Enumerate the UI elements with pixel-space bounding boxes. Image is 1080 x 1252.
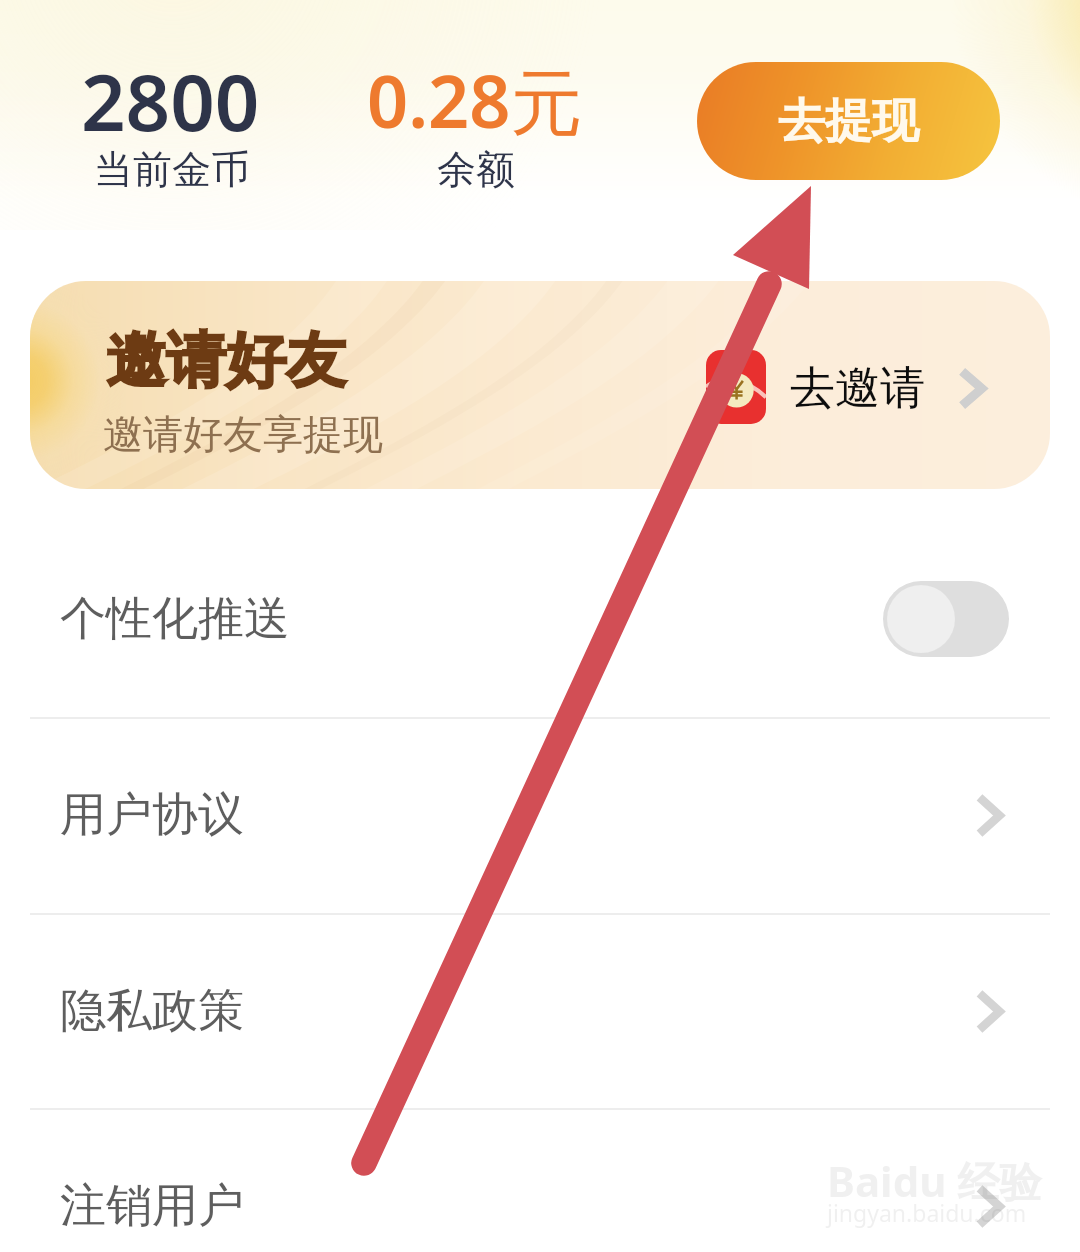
- staticText: 余额: [437, 145, 515, 194]
- button[interactable]: 去邀请: [790, 350, 985, 426]
- staticText: 0.28元: [367, 51, 583, 149]
- other: Open 隐私政策: [977, 991, 1002, 1032]
- staticText: 用户协议: [60, 786, 244, 844]
- other: Open 注销用户: [977, 1186, 1002, 1227]
- button[interactable]: Personalized push toggle: [883, 581, 1009, 657]
- button[interactable]: 个性化推送: [0, 521, 1080, 717]
- staticText: Baidu 经验: [827, 1152, 1042, 1209]
- button[interactable]: 隐私政策: [0, 913, 1080, 1109]
- staticText: 邀请好友: [106, 323, 346, 399]
- staticText: 去邀请: [790, 360, 925, 417]
- staticText: 隐私政策: [60, 982, 244, 1040]
- button[interactable]: 邀请好友: [30, 281, 1050, 489]
- other: Open 用户协议: [977, 795, 1002, 836]
- staticText: 注销用户: [60, 1177, 244, 1235]
- staticText: 邀请好友享提现: [103, 409, 383, 459]
- staticText: jingyan.baidu.com: [827, 1197, 1027, 1228]
- staticText: 当前金币: [94, 145, 250, 194]
- button[interactable]: 去提现: [697, 62, 1000, 180]
- staticText: 个性化推送: [60, 590, 290, 648]
- button[interactable]: 用户协议: [0, 717, 1080, 913]
- staticText: 2800: [81, 48, 260, 154]
- staticText: 去提现: [778, 92, 919, 151]
- button[interactable]: 注销用户: [0, 1108, 1080, 1252]
